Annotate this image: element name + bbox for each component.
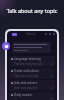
staticText: Language learning xyxy=(14,57,53,61)
button[interactable]: Jobs and careers xyxy=(9,80,55,91)
staticText: Daily routine xyxy=(14,93,53,97)
staticText: Morning to evening xyxy=(14,98,51,99)
staticText: Talk about any topic xyxy=(0,7,64,14)
staticText: Plan your next trip xyxy=(14,74,51,78)
button[interactable]: Upgrade xyxy=(12,33,17,36)
button[interactable]: Language learning xyxy=(9,56,55,67)
staticText: History xyxy=(26,32,36,36)
button[interactable]: Travel and culture xyxy=(9,68,55,79)
staticText: Practise everyday talk xyxy=(14,62,51,66)
staticText: Travel and culture xyxy=(14,69,53,73)
button[interactable]: Daily routine xyxy=(9,92,55,100)
staticText: Interview practice xyxy=(14,86,51,90)
button[interactable]: Assistant avatar xyxy=(2,42,10,50)
staticText: Jobs and careers xyxy=(14,81,53,85)
button[interactable]: More options xyxy=(45,33,55,35)
